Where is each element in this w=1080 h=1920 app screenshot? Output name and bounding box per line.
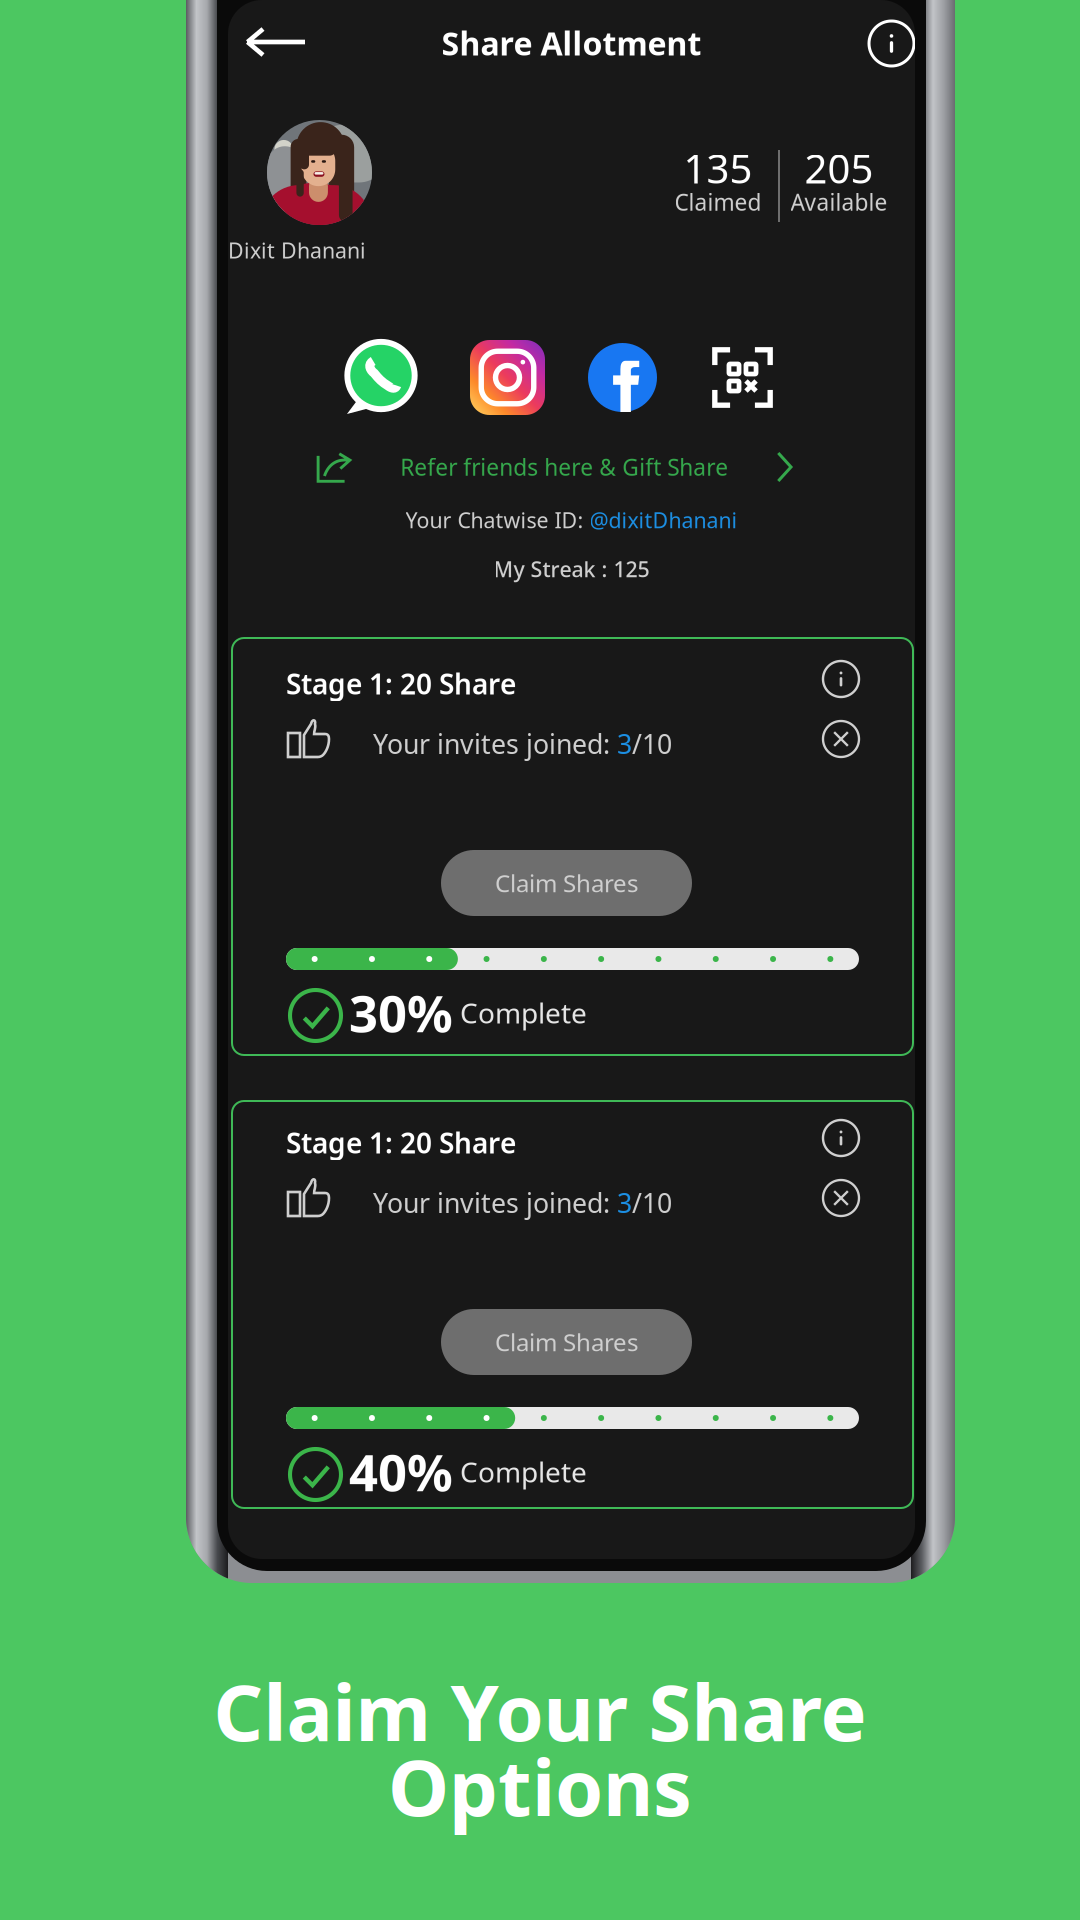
staticText: Complete — [453, 1453, 587, 1490]
staticText: 30% — [349, 979, 453, 1046]
staticText: 40% — [349, 1438, 453, 1505]
button[interactable]: Share on Instagram — [470, 340, 545, 415]
staticText: 3 — [617, 1185, 632, 1220]
staticText: Claimed — [674, 187, 761, 217]
staticText: Complete — [453, 994, 587, 1031]
staticText: Stage 1: 20 Share — [286, 665, 516, 702]
staticText: 135 — [683, 141, 752, 194]
staticText: /10 — [632, 726, 672, 761]
staticText: Your Chatwise ID: — [405, 506, 589, 534]
button[interactable]: Claim Shares — [441, 1309, 692, 1375]
staticText: Refer friends here & Gift Share — [400, 452, 728, 482]
staticText: Options — [388, 1735, 692, 1837]
button[interactable]: Stage information — [823, 661, 859, 697]
button[interactable]: Back — [245, 27, 307, 57]
staticText: Your invites joined: — [373, 726, 617, 761]
staticText: /10 — [632, 1185, 672, 1220]
staticText: Available — [790, 187, 887, 217]
button[interactable]: Claim Shares — [441, 850, 692, 916]
staticText: Claim Your Share — [213, 1660, 866, 1762]
button[interactable]: Stage information — [823, 1120, 859, 1156]
staticText: Claim Shares — [495, 867, 638, 899]
staticText: Dixit Dhanani — [228, 236, 366, 264]
staticText: My Streak : 125 — [493, 555, 649, 583]
staticText: 3 — [617, 726, 632, 761]
staticText: Your invites joined: — [373, 1185, 617, 1220]
button[interactable]: Dismiss — [823, 721, 859, 757]
staticText: Claim Shares — [495, 1326, 638, 1358]
button[interactable]: Show QR code — [711, 346, 774, 409]
button[interactable]: Share on Facebook — [588, 343, 657, 412]
button[interactable]: Refer friends here & Gift Share — [316, 445, 794, 489]
button[interactable]: Share on WhatsApp — [344, 340, 418, 414]
staticText: @dixitDhanani — [589, 506, 737, 534]
staticText: Stage 1: 20 Share — [286, 1124, 516, 1161]
staticText: 205 — [804, 141, 873, 194]
button[interactable]: Information — [869, 21, 914, 66]
button[interactable]: Dismiss — [823, 1180, 859, 1216]
staticText: Share Allotment — [441, 22, 701, 64]
